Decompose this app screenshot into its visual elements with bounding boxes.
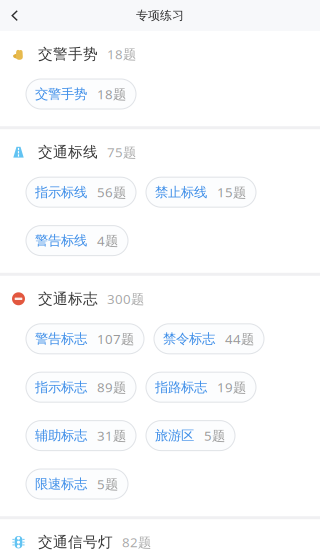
staticText: 指示标线 bbox=[35, 184, 87, 200]
staticText: 4题 bbox=[97, 232, 118, 249]
staticText: 89题 bbox=[97, 378, 126, 396]
staticText: 旅游区 bbox=[155, 427, 194, 444]
staticText: 31题 bbox=[97, 427, 126, 444]
staticText: 5题 bbox=[97, 475, 118, 493]
staticText: 交通信号灯 bbox=[38, 533, 113, 551]
staticText: 警告标线 bbox=[35, 232, 87, 249]
staticText: 15题 bbox=[217, 183, 246, 201]
staticText: 辅助标志 bbox=[35, 427, 87, 444]
staticText: 107题 bbox=[97, 330, 134, 348]
staticText: 专项练习 bbox=[136, 8, 184, 23]
staticText: 交通标志 bbox=[38, 290, 98, 308]
button[interactable]: Back bbox=[0, 1, 29, 30]
button[interactable]: 旅游区 bbox=[146, 421, 235, 451]
staticText: 5题 bbox=[204, 427, 225, 444]
button[interactable]: 警告标线 bbox=[26, 226, 128, 256]
staticText: 禁止标线 bbox=[155, 184, 207, 200]
staticText: 44题 bbox=[225, 330, 254, 348]
staticText: 限速标志 bbox=[35, 476, 87, 492]
staticText: 交警手势 bbox=[38, 45, 98, 63]
staticText: 56题 bbox=[97, 183, 126, 201]
staticText: 警告标志 bbox=[35, 331, 87, 347]
staticText: 指路标志 bbox=[155, 379, 207, 395]
button[interactable]: 指示标线 bbox=[26, 177, 136, 207]
staticText: 禁令标志 bbox=[163, 331, 215, 347]
staticText: 300题 bbox=[107, 290, 144, 308]
button[interactable]: 指示标志 bbox=[26, 372, 136, 402]
staticText: 18题 bbox=[97, 85, 126, 103]
staticText: 75题 bbox=[107, 143, 136, 161]
button[interactable]: 警告标志 bbox=[26, 324, 144, 354]
staticText: 82题 bbox=[122, 533, 151, 551]
staticText: 19题 bbox=[217, 378, 246, 396]
button[interactable]: 禁止标线 bbox=[146, 177, 256, 207]
staticText: 交警手势 bbox=[35, 86, 87, 102]
staticText: 18题 bbox=[107, 45, 136, 63]
button[interactable]: 辅助标志 bbox=[26, 421, 136, 451]
button[interactable]: 交警手势 bbox=[26, 79, 136, 109]
staticText: 交通标线 bbox=[38, 143, 98, 161]
staticText: 指示标志 bbox=[35, 379, 87, 395]
button[interactable]: 限速标志 bbox=[26, 469, 128, 499]
button[interactable]: 指路标志 bbox=[146, 372, 256, 402]
button[interactable]: 禁令标志 bbox=[154, 324, 264, 354]
